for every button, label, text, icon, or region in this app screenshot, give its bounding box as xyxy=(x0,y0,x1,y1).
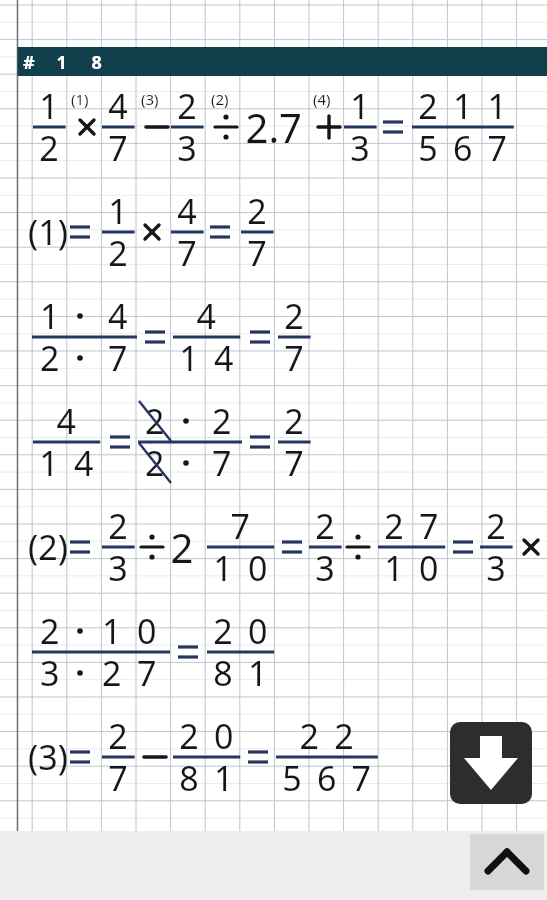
button[interactable]: Scroll to next step xyxy=(450,722,532,804)
button[interactable]: Problem 18 xyxy=(17,48,547,77)
button[interactable]: Show keypad xyxy=(470,834,544,890)
